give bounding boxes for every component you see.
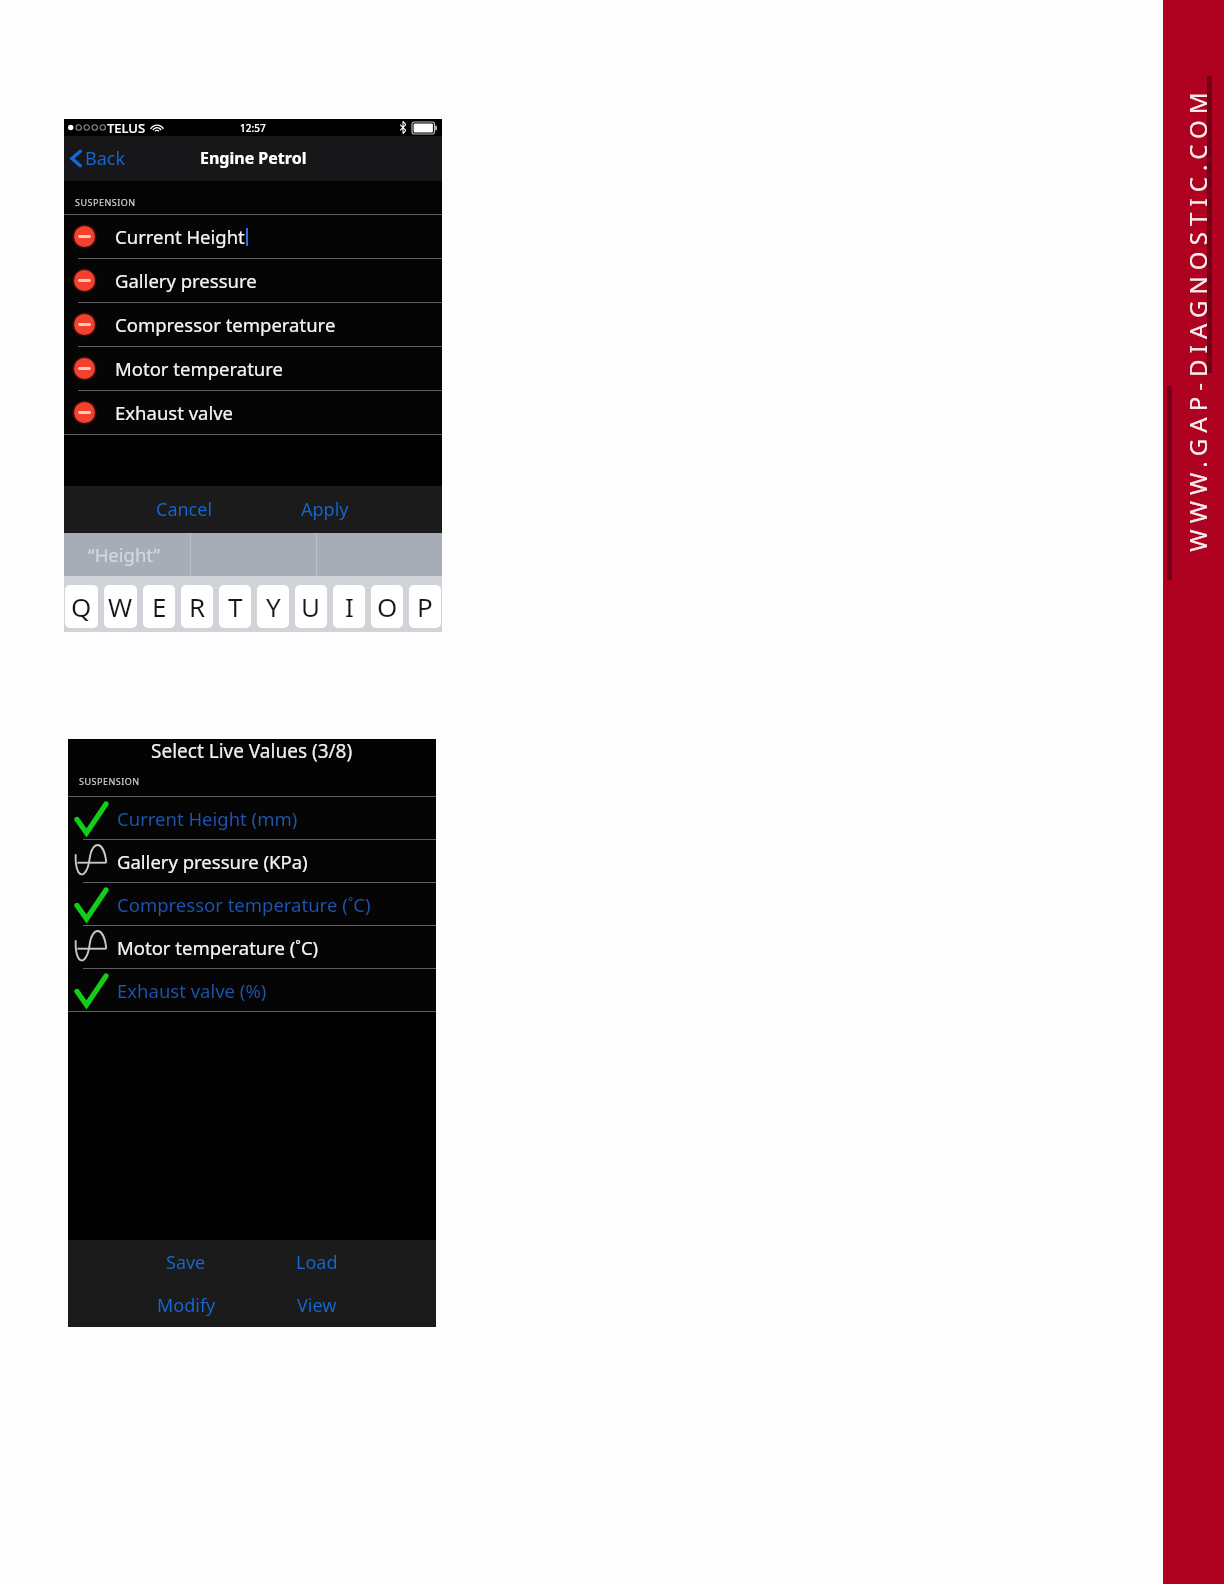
staticText: W [108, 589, 133, 624]
staticText: Y [266, 589, 281, 624]
button[interactable]: Current Height (mm) [68, 797, 436, 839]
button[interactable]: R [181, 585, 213, 628]
staticText: Motor temperature (˚C) [117, 935, 319, 960]
button[interactable]: Cancel [64, 486, 253, 533]
button[interactable]: Back [64, 136, 134, 181]
staticText: “Height” [88, 542, 161, 567]
staticText: P [417, 589, 433, 624]
staticText: Modify [157, 1293, 216, 1318]
staticText: Compressor temperature (˚C) [117, 892, 371, 917]
staticText: Back [85, 146, 126, 171]
staticText: SUSPENSION [75, 196, 136, 208]
staticText: R [189, 589, 206, 624]
button[interactable]: Exhaust valve (%) [68, 969, 436, 1011]
staticText: Q [71, 589, 92, 624]
staticText: Exhaust valve [115, 400, 234, 425]
staticText: T [228, 589, 243, 624]
button[interactable]: View [252, 1284, 436, 1327]
button[interactable]: Remove Exhaust valve [64, 391, 442, 434]
staticText: U [301, 589, 321, 624]
staticText: SUSPENSION [79, 775, 140, 787]
button[interactable]: Apply [253, 486, 442, 533]
button[interactable]: W [104, 585, 137, 628]
staticText: Gallery pressure [115, 268, 257, 293]
button[interactable]: Remove Motor temperature [64, 347, 442, 390]
button[interactable]: Save [68, 1240, 252, 1284]
other: Remove Compressor temperature [74, 314, 95, 335]
button[interactable]: O [371, 585, 403, 628]
staticText: O [377, 589, 398, 624]
staticText: I [345, 589, 354, 624]
staticText: TELUS [107, 119, 146, 136]
staticText: Motor temperature [115, 356, 283, 381]
button[interactable]: Remove Gallery pressure [64, 259, 442, 302]
button[interactable]: Motor temperature (˚C) [68, 926, 436, 968]
staticText: View [297, 1293, 337, 1318]
other: Remove Exhaust valve [74, 402, 95, 423]
other: Remove Gallery pressure [74, 270, 95, 291]
button[interactable]: Remove Compressor temperature [64, 303, 442, 346]
button[interactable]: I [333, 585, 365, 628]
staticText: Compressor temperature [115, 312, 336, 337]
button[interactable]: Y [257, 585, 289, 628]
staticText: Engine Petrol [200, 147, 307, 169]
button[interactable]: U [295, 585, 327, 628]
staticText: Save [166, 1250, 206, 1275]
staticText: E [152, 589, 167, 624]
button[interactable]: Load [252, 1240, 436, 1284]
other: Remove Motor temperature [74, 358, 95, 379]
button[interactable]: P [409, 585, 441, 628]
staticText: Load [296, 1250, 338, 1275]
other: Remove Current Height [74, 226, 95, 247]
button[interactable]: Compressor temperature (˚C) [68, 883, 436, 925]
button[interactable]: Modify [68, 1284, 252, 1327]
staticText: 12:57 [240, 121, 266, 135]
button[interactable]: E [143, 585, 175, 628]
button[interactable]: Gallery pressure (KPa) [68, 840, 436, 882]
staticText: Gallery pressure (KPa) [117, 849, 308, 874]
staticText: Select Live Values (3/8) [151, 738, 353, 764]
staticText: Apply [301, 497, 349, 522]
staticText: WWW.GAP-DIAGNOSTIC.COM [1181, 86, 1214, 552]
button[interactable]: “Height” [64, 533, 190, 576]
staticText: Cancel [156, 497, 213, 522]
button[interactable]: T [219, 585, 251, 628]
staticText: Current Height [115, 224, 245, 249]
staticText: Exhaust valve (%) [117, 978, 267, 1003]
button[interactable]: Remove Current Height [64, 215, 442, 258]
staticText: Current Height (mm) [117, 806, 298, 831]
button[interactable]: Q [65, 585, 98, 628]
